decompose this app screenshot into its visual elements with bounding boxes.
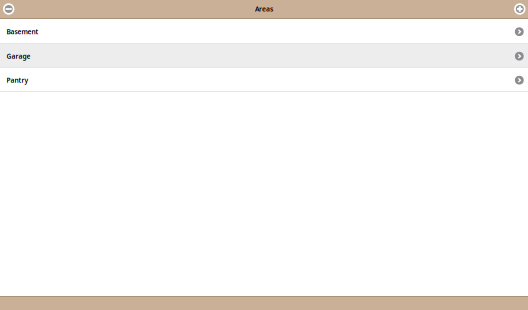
button[interactable]: Pantry <box>0 67 528 91</box>
staticText: Basement <box>6 27 38 36</box>
staticText: Pantry <box>6 76 28 85</box>
staticText: Garage <box>6 52 30 61</box>
button[interactable]: Add area <box>514 3 525 15</box>
staticText: Areas <box>255 5 273 13</box>
button[interactable]: Garage <box>0 43 528 67</box>
button[interactable]: Remove area <box>3 3 14 15</box>
button[interactable]: Basement <box>0 19 528 43</box>
